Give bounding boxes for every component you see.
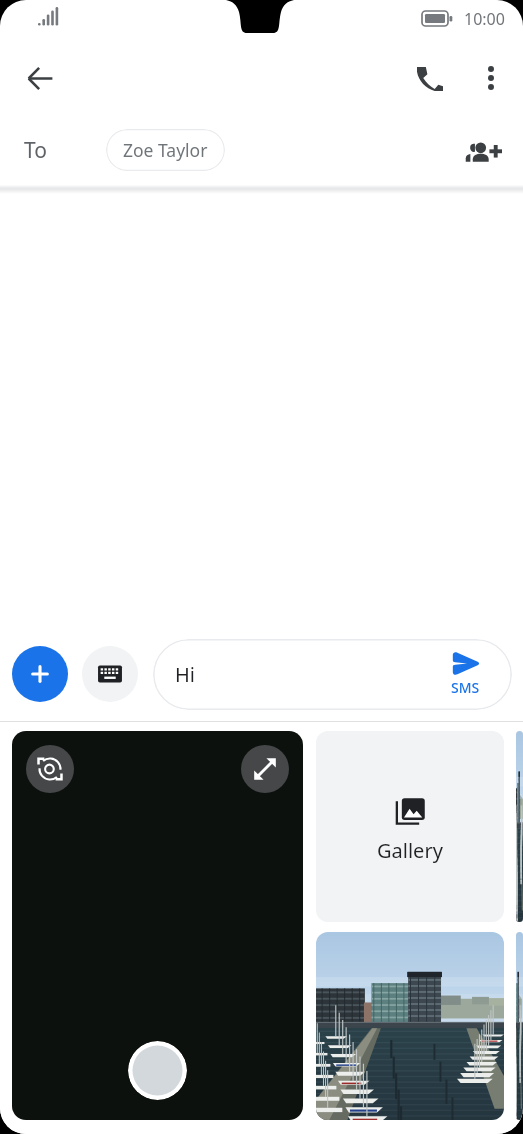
staticText: Hi: [175, 661, 195, 688]
button[interactable]: Back: [17, 55, 63, 101]
button[interactable]: Gallery: [316, 731, 504, 922]
button[interactable]: Add attachment: [12, 646, 68, 702]
button[interactable]: Take photo: [128, 1041, 187, 1100]
button[interactable]: Add people: [457, 127, 509, 179]
button[interactable]: Keyboard: [82, 646, 138, 702]
button[interactable]: Expand: [241, 745, 289, 793]
button[interactable]: Send SMS: [447, 650, 484, 699]
staticText: Zoe Taylor: [123, 138, 208, 162]
button[interactable]: Camera: [12, 731, 303, 1120]
button[interactable]: Photo of harbour: [316, 932, 504, 1120]
button[interactable]: Photo of harbour: [516, 731, 523, 922]
staticText: Gallery: [377, 837, 443, 864]
button[interactable]: Zoe Taylor: [106, 129, 225, 171]
button[interactable]: Photo of harbour: [516, 932, 523, 1120]
button[interactable]: More options: [468, 55, 514, 101]
staticText: 10:00: [464, 8, 505, 30]
button[interactable]: Call: [407, 55, 453, 101]
staticText: SMS: [451, 678, 480, 697]
staticText: To: [24, 136, 47, 165]
button[interactable]: Flip camera: [26, 745, 74, 793]
